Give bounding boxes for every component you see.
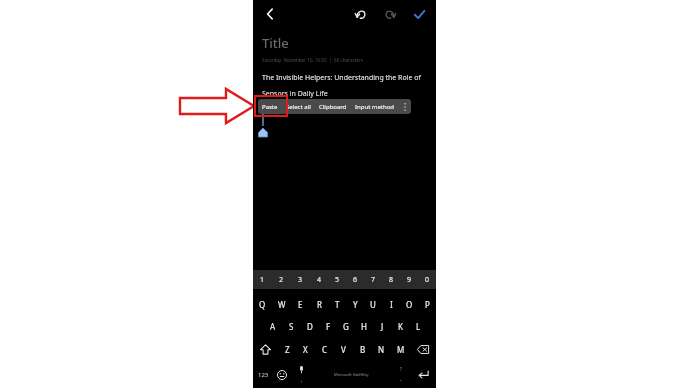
staticText: X [303, 344, 308, 355]
staticText: ? [400, 366, 402, 372]
staticText: S [289, 321, 294, 332]
staticText: 5 [335, 275, 340, 285]
button[interactable]: Y [346, 293, 364, 315]
button[interactable]: 8 [382, 270, 400, 289]
button[interactable]: 9 [400, 270, 418, 289]
staticText: 7 [371, 275, 376, 285]
button[interactable]: W [272, 293, 291, 315]
staticText: 123 [258, 371, 269, 379]
staticText: R [317, 299, 322, 310]
staticText: Saturday, November 16, 16:03 | 60 charac… [262, 57, 364, 63]
button[interactable]: Q [253, 293, 272, 315]
button[interactable]: B [353, 338, 372, 361]
staticText: Paste [262, 103, 278, 111]
button[interactable]: S [282, 315, 301, 338]
staticText: K [398, 321, 403, 332]
staticText: E [298, 299, 303, 310]
staticText: L [416, 321, 421, 332]
staticText: . [400, 375, 402, 383]
staticText: 2 [279, 275, 284, 285]
button[interactable]: Input method [351, 99, 399, 114]
staticText: M [397, 344, 405, 355]
staticText: V [341, 344, 346, 355]
staticText: Sensors in Daily Life [262, 89, 328, 99]
button[interactable]: 4 [310, 270, 328, 289]
staticText: P [425, 299, 430, 310]
staticText: Clipboard [319, 103, 347, 111]
button[interactable]: Z [278, 338, 296, 361]
button[interactable]: 1 [253, 270, 272, 289]
staticText: The Invisible Helpers: Understanding the… [262, 73, 421, 83]
staticText: N [378, 344, 385, 355]
staticText: I [390, 299, 393, 310]
button[interactable]: Voice input [291, 361, 311, 388]
staticText: , [301, 377, 303, 384]
staticText: F [326, 321, 331, 332]
staticText: 8 [389, 275, 394, 285]
staticText: U [370, 299, 376, 310]
staticText: 1 [260, 275, 265, 285]
button[interactable]: E [291, 293, 310, 315]
button[interactable]: X [296, 338, 315, 361]
button[interactable]: V [334, 338, 353, 361]
button[interactable]: 0 [418, 270, 436, 289]
button[interactable]: A [263, 315, 282, 338]
staticText: J [381, 321, 384, 332]
staticText: Select all [286, 103, 311, 111]
button[interactable]: Enter [411, 361, 436, 388]
button[interactable]: Back [259, 3, 281, 25]
button[interactable]: L [409, 315, 427, 338]
staticText: Y [353, 299, 358, 310]
button[interactable]: More options [399, 99, 411, 114]
button[interactable]: F [319, 315, 337, 338]
button[interactable]: R [310, 293, 328, 315]
staticText: 4 [317, 275, 322, 285]
staticText: A [270, 321, 276, 332]
button[interactable]: K [391, 315, 409, 338]
button[interactable]: Emoji [273, 361, 291, 388]
button[interactable]: C [315, 338, 334, 361]
staticText: G [343, 321, 349, 332]
button[interactable]: 123 [253, 361, 273, 388]
staticText: Title [262, 34, 289, 52]
staticText: T [335, 299, 340, 310]
button[interactable]: Save [409, 4, 429, 24]
staticText: B [360, 344, 366, 355]
button[interactable]: Paste [258, 99, 282, 114]
staticText: O [406, 299, 413, 310]
staticText: H [361, 321, 367, 332]
button[interactable]: D [301, 315, 319, 338]
staticText: D [307, 321, 313, 332]
staticText: 3 [298, 275, 303, 285]
button[interactable]: Undo [351, 4, 371, 24]
button[interactable]: I [382, 293, 400, 315]
button[interactable]: 5 [328, 270, 346, 289]
button[interactable]: G [337, 315, 355, 338]
button[interactable]: H [355, 315, 373, 338]
button[interactable]: Redo [380, 4, 400, 24]
button[interactable]: 6 [346, 270, 364, 289]
staticText: Z [285, 344, 290, 355]
staticText: Microsoft SwiftKey [334, 372, 369, 377]
button[interactable]: T [328, 293, 346, 315]
staticText: 9 [407, 275, 412, 285]
button[interactable]: ? [391, 361, 411, 388]
staticText: W [278, 299, 286, 310]
button[interactable]: M [391, 338, 410, 361]
button[interactable]: Clipboard [315, 99, 351, 114]
button[interactable]: Microsoft SwiftKey [311, 361, 391, 388]
staticText: 0 [425, 275, 430, 285]
button[interactable]: J [373, 315, 391, 338]
button[interactable]: 7 [364, 270, 382, 289]
button[interactable]: Shift [253, 338, 278, 361]
button[interactable]: Backspace [410, 338, 436, 361]
button[interactable]: U [364, 293, 382, 315]
button[interactable]: Select all [282, 99, 315, 114]
staticText: C [322, 344, 328, 355]
button[interactable]: O [400, 293, 418, 315]
button[interactable]: N [372, 338, 391, 361]
button[interactable]: 3 [291, 270, 310, 289]
staticText: Input method [355, 103, 395, 111]
button[interactable]: P [418, 293, 436, 315]
button[interactable]: 2 [272, 270, 291, 289]
